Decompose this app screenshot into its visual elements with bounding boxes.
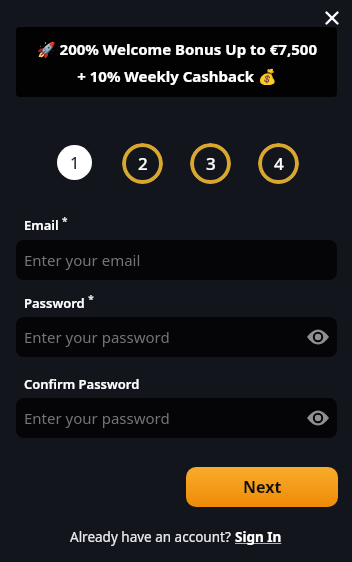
- staticText: 3: [206, 152, 216, 175]
- button[interactable]: 2: [122, 143, 163, 184]
- button[interactable]: Next: [186, 467, 338, 507]
- button[interactable]: [314, 0, 350, 36]
- staticText: Enter your email: [24, 250, 141, 270]
- staticText: 2: [138, 152, 148, 175]
- button[interactable]: 4: [258, 143, 299, 184]
- staticText: Next: [243, 476, 282, 498]
- button[interactable]: Enter your email: [16, 240, 337, 280]
- staticText: 1: [70, 152, 80, 174]
- button[interactable]: Enter your password: [16, 398, 337, 438]
- staticText: Already have an account?: [70, 528, 235, 546]
- staticText: Email *: [24, 214, 68, 233]
- staticText: Enter your password: [24, 327, 170, 347]
- button[interactable]: Enter your password: [16, 317, 337, 357]
- staticText: Confirm Password: [24, 375, 140, 393]
- button[interactable]: 🚀 200% Welcome Bonus Up to €7,500 + 10% …: [16, 27, 337, 97]
- button[interactable]: 1: [57, 145, 92, 180]
- button[interactable]: Already have an account?: [0, 528, 352, 546]
- button[interactable]: 3: [190, 143, 231, 184]
- staticText: 🚀 200% Welcome Bonus Up to €7,500 + 10% …: [37, 39, 317, 86]
- staticText: Password *: [24, 292, 94, 311]
- staticText: Sign In: [235, 528, 282, 546]
- staticText: 4: [274, 152, 284, 175]
- staticText: Enter your password: [24, 408, 170, 428]
